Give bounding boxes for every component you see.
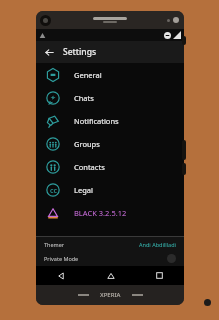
button[interactable]: BLACK 3.2.5.12	[36, 201, 184, 224]
button[interactable]: Home	[86, 266, 135, 285]
button[interactable]: Private Mode	[36, 251, 184, 266]
button[interactable]: Back	[36, 266, 86, 285]
button[interactable]: General	[36, 63, 184, 86]
button[interactable]: Back	[43, 46, 56, 59]
staticText: Themer	[44, 241, 65, 248]
button[interactable]: Chats	[36, 86, 184, 109]
staticText: Notifications	[74, 116, 119, 126]
staticText: Private Mode	[44, 255, 79, 262]
staticText: BLACK 3.2.5.12	[74, 208, 127, 218]
button[interactable]: Contacts	[36, 155, 184, 178]
staticText: Settings	[63, 46, 97, 58]
staticText: XPERIA	[100, 291, 121, 299]
staticText: Legal	[74, 185, 93, 195]
button[interactable]: Notifications	[36, 109, 184, 132]
staticText: Groups	[74, 139, 100, 149]
button[interactable]: Groups	[36, 132, 184, 155]
staticText: Contacts	[74, 162, 105, 172]
staticText: CC	[50, 187, 57, 194]
button[interactable]: CC	[36, 178, 184, 201]
staticText: Andi Abdillladi	[139, 241, 176, 248]
button[interactable]: Themer	[36, 237, 184, 251]
staticText: General	[74, 70, 102, 80]
staticText: Chats	[74, 93, 94, 103]
button[interactable]: Recents	[135, 266, 184, 285]
